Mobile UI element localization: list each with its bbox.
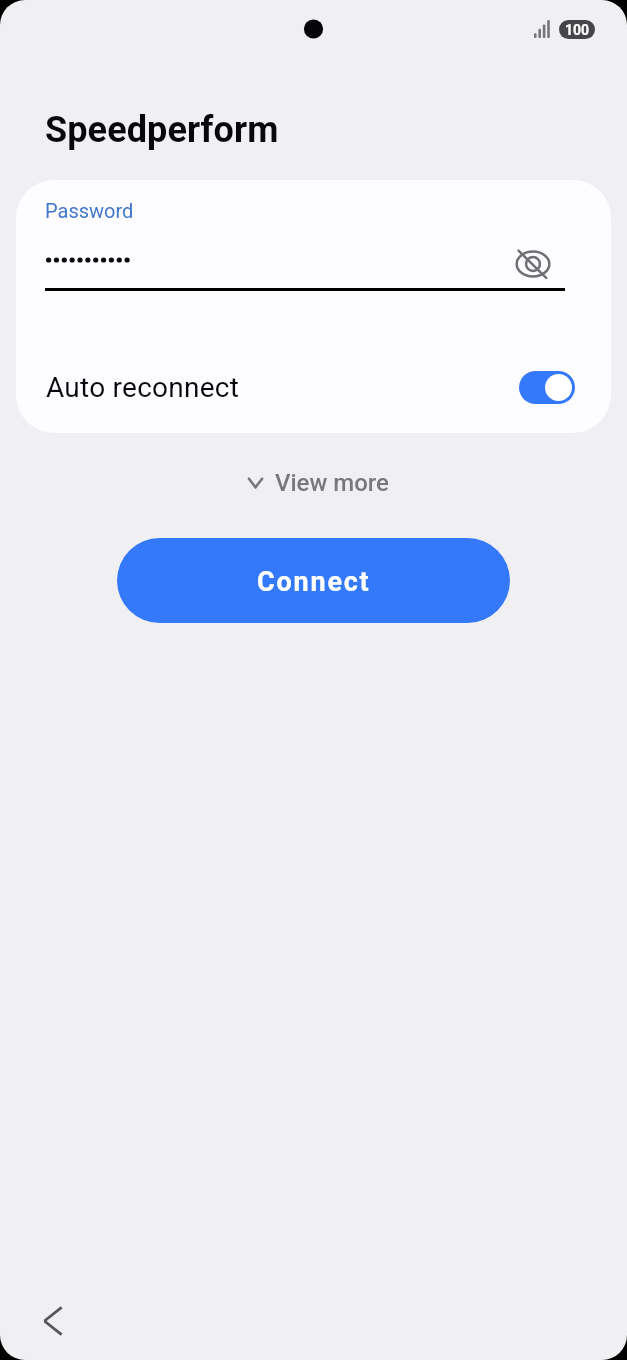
button[interactable]: Back (28, 1296, 78, 1346)
staticText: Password (45, 199, 134, 222)
staticText: 100 (565, 22, 590, 38)
button[interactable]: Auto reconnect (16, 356, 611, 418)
staticText: Speedperform (45, 109, 279, 151)
button[interactable]: Auto reconnect toggle (519, 371, 575, 404)
button[interactable]: View more (242, 465, 397, 501)
button[interactable]: Connect (117, 538, 510, 623)
staticText: Connect (257, 566, 371, 598)
staticText: View more (275, 469, 389, 497)
button[interactable]: Show password (502, 233, 564, 295)
staticText: Auto reconnect (46, 371, 240, 404)
